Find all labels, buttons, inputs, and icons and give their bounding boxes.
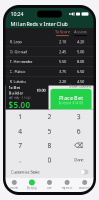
button[interactable]: 2 [35, 109, 64, 124]
staticText: . [19, 155, 21, 164]
button[interactable]: 8 [35, 138, 64, 153]
staticText: $9.00 [36, 87, 45, 93]
staticText: 6 [77, 127, 81, 135]
staticText: Betslip [27, 186, 37, 190]
button[interactable]: 7 [5, 138, 35, 153]
button[interactable]: 5 [35, 124, 64, 138]
button[interactable]: Live [41, 177, 58, 192]
button[interactable]: Account [76, 177, 93, 192]
button[interactable]: Customise Stake [80, 170, 88, 174]
button[interactable]: My Bets [58, 177, 76, 192]
button[interactable]: 4 [5, 124, 35, 138]
staticText: Done [74, 157, 83, 162]
staticText: Both Teams To Score [9, 98, 48, 103]
button[interactable]: Place Bet [50, 89, 91, 111]
staticText: To Score [55, 29, 70, 34]
button[interactable]: Done [64, 153, 93, 167]
staticText: 7 [18, 141, 22, 150]
staticText: 2.20 [59, 79, 66, 84]
button[interactable]: 3 [64, 109, 93, 124]
staticText: Milan Reds v Inter Club [10, 20, 67, 28]
staticText: Home [10, 186, 18, 189]
staticText: My Bets [62, 186, 72, 189]
staticText: 3.75 [59, 69, 66, 74]
staticText: 4 [18, 127, 22, 135]
staticText: 10:24 [10, 10, 23, 18]
staticText: 0 [47, 155, 51, 164]
staticText: 2.45 [59, 49, 66, 54]
staticText: 3 [77, 112, 81, 121]
staticText: 1x Bet Builder [8, 85, 23, 95]
staticText: Customise Stake [10, 169, 39, 175]
staticText: $5.00 [8, 99, 30, 110]
button[interactable]: 6 [64, 124, 93, 138]
button[interactable]: ⌫ [64, 138, 93, 153]
staticText: R. Leao [9, 39, 21, 44]
staticText: 1 [18, 112, 22, 121]
staticText: O. Giroud [9, 49, 26, 54]
button[interactable]: 1 [5, 109, 35, 124]
staticText: 2 [47, 112, 51, 121]
staticText: 5.00 [77, 49, 84, 54]
staticText: To return $14.00 [58, 101, 83, 105]
staticText: T. Hernandez [9, 59, 32, 64]
staticText: Assists [74, 29, 87, 34]
staticText: C. Pulisic [9, 69, 25, 74]
staticText: L. Martinez [9, 89, 29, 94]
staticText: ⌫ [74, 142, 83, 149]
staticText: Live [47, 186, 52, 189]
staticText: Place Bet [59, 94, 83, 101]
button[interactable]: Show Options [66, 83, 93, 88]
staticText: R. Lukaku [9, 79, 25, 84]
staticText: 6.50 [77, 69, 84, 74]
staticText: Each way · 3 legs [8, 96, 30, 99]
staticText: Show Options [68, 83, 91, 88]
button[interactable]: Betslip [23, 177, 41, 192]
button[interactable]: 0 [35, 153, 64, 167]
staticText: 5 [47, 127, 51, 135]
staticText: 8 [47, 141, 51, 150]
staticText: 8.00 [77, 59, 84, 64]
staticText: 2.10 [59, 39, 66, 44]
staticText: 5.50 [59, 59, 66, 64]
staticText: 4.50 [77, 79, 84, 84]
button[interactable]: Home [5, 177, 23, 192]
staticText: 4.20 [77, 39, 84, 44]
staticText: Account [79, 186, 90, 189]
